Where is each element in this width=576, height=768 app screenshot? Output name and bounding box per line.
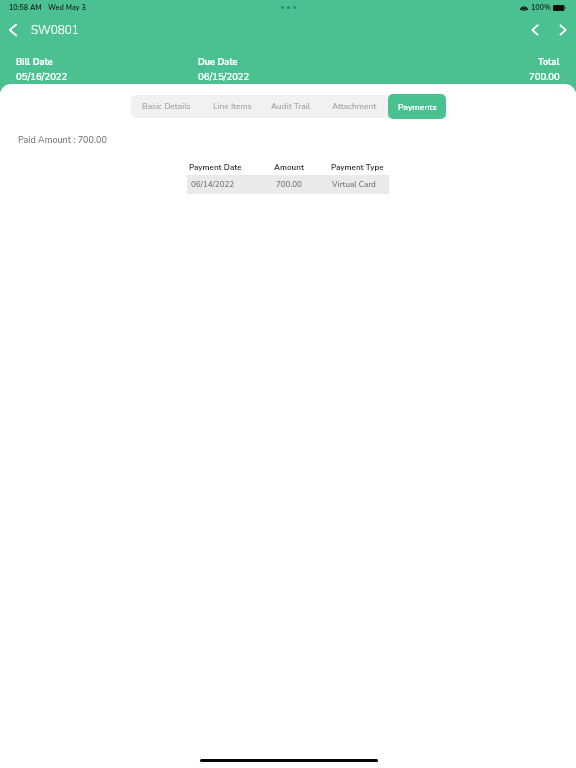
staticText: Paid Amount : 700.00 — [18, 134, 107, 146]
staticText: Payment Date — [189, 162, 273, 173]
staticText: Attachment — [332, 101, 377, 112]
staticText: Due Date — [198, 56, 238, 68]
button[interactable]: Back — [1, 18, 25, 42]
staticText: 700.00 — [276, 179, 329, 190]
button[interactable]: Previous record — [524, 19, 546, 41]
button[interactable]: Audit Trail — [262, 95, 320, 118]
staticText: 06/14/2022 — [191, 179, 273, 190]
staticText: 10:58 AM — [9, 3, 42, 13]
button[interactable]: Line Items — [202, 95, 262, 118]
staticText: Amount — [274, 162, 329, 173]
button[interactable]: Payments — [388, 94, 446, 119]
staticText: 700.00 — [529, 70, 560, 83]
staticText: Virtual Card — [332, 179, 376, 190]
button[interactable]: Next record — [552, 19, 574, 41]
staticText: Basic Details — [142, 101, 191, 112]
staticText: SW0801 — [31, 22, 79, 38]
staticText: Total — [538, 56, 560, 68]
staticText: Payment Type — [331, 162, 384, 173]
staticText: 100% — [531, 3, 551, 13]
staticText: Bill Date — [16, 56, 53, 68]
button[interactable]: Attachment — [320, 95, 388, 118]
button[interactable]: Basic Details — [131, 95, 202, 118]
staticText: Line Items — [213, 101, 252, 112]
staticText: 06/15/2022 — [198, 70, 250, 83]
staticText: 05/16/2022 — [16, 70, 68, 83]
staticText: Audit Trail — [271, 101, 311, 112]
staticText: Payments — [398, 101, 437, 113]
staticText: Wed May 3 — [48, 3, 86, 13]
